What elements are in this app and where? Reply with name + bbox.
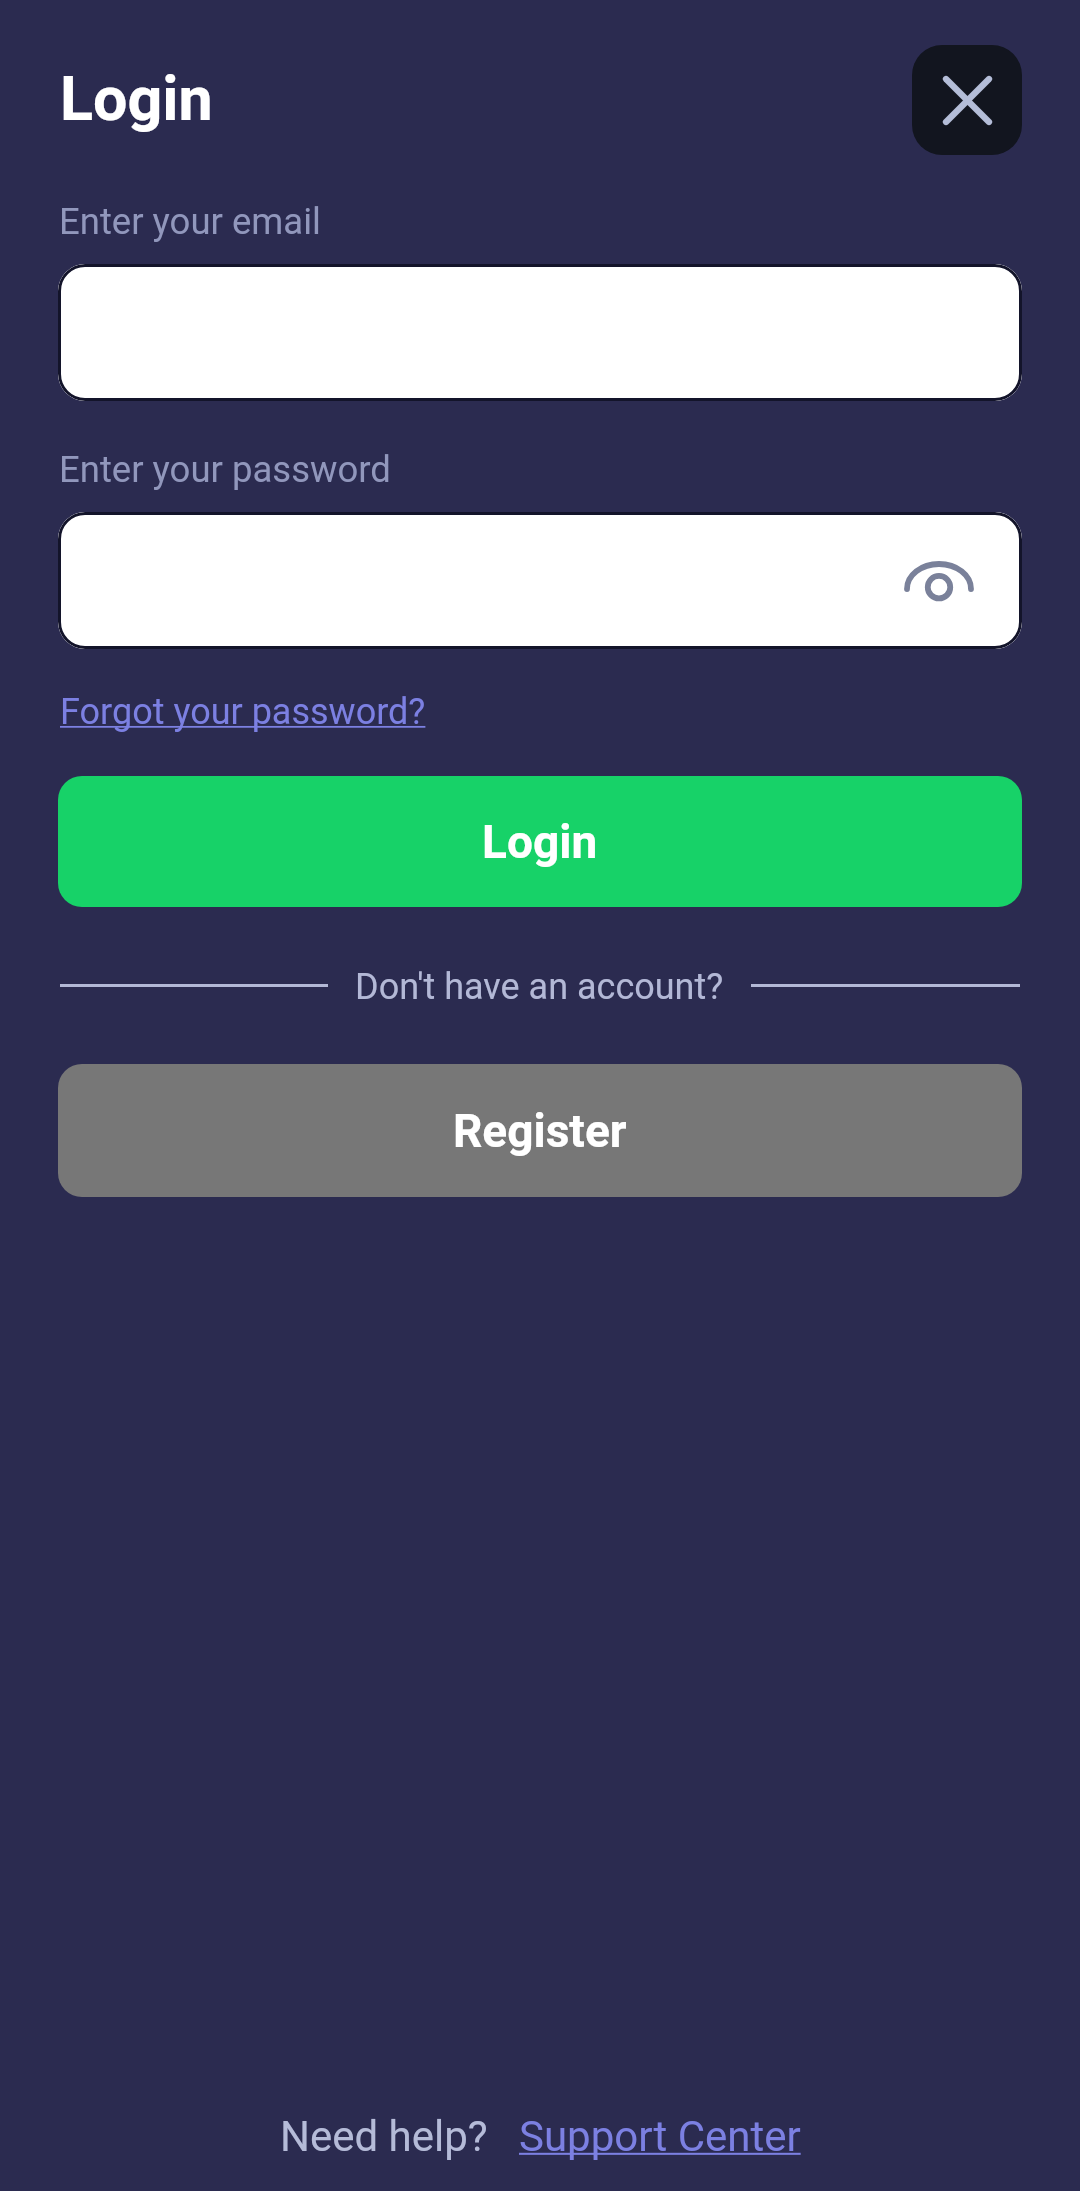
staticText: Enter your password	[59, 448, 391, 491]
staticText: Login	[60, 63, 213, 134]
button[interactable]: Close	[912, 45, 1022, 155]
button[interactable]	[58, 264, 1022, 401]
button[interactable]: Show password	[891, 533, 987, 629]
staticText: Register	[453, 1104, 627, 1158]
staticText: Login	[482, 815, 598, 869]
staticText: Don't have an account?	[355, 966, 724, 1008]
button[interactable]: Support Center	[519, 2112, 801, 2161]
button[interactable]: Register	[58, 1064, 1022, 1197]
staticText: Need help?	[280, 2112, 488, 2161]
button[interactable]: Forgot your password?	[60, 691, 426, 733]
button[interactable]: Show password	[58, 512, 1022, 649]
staticText: Enter your email	[59, 200, 321, 243]
button[interactable]: Login	[58, 776, 1022, 907]
